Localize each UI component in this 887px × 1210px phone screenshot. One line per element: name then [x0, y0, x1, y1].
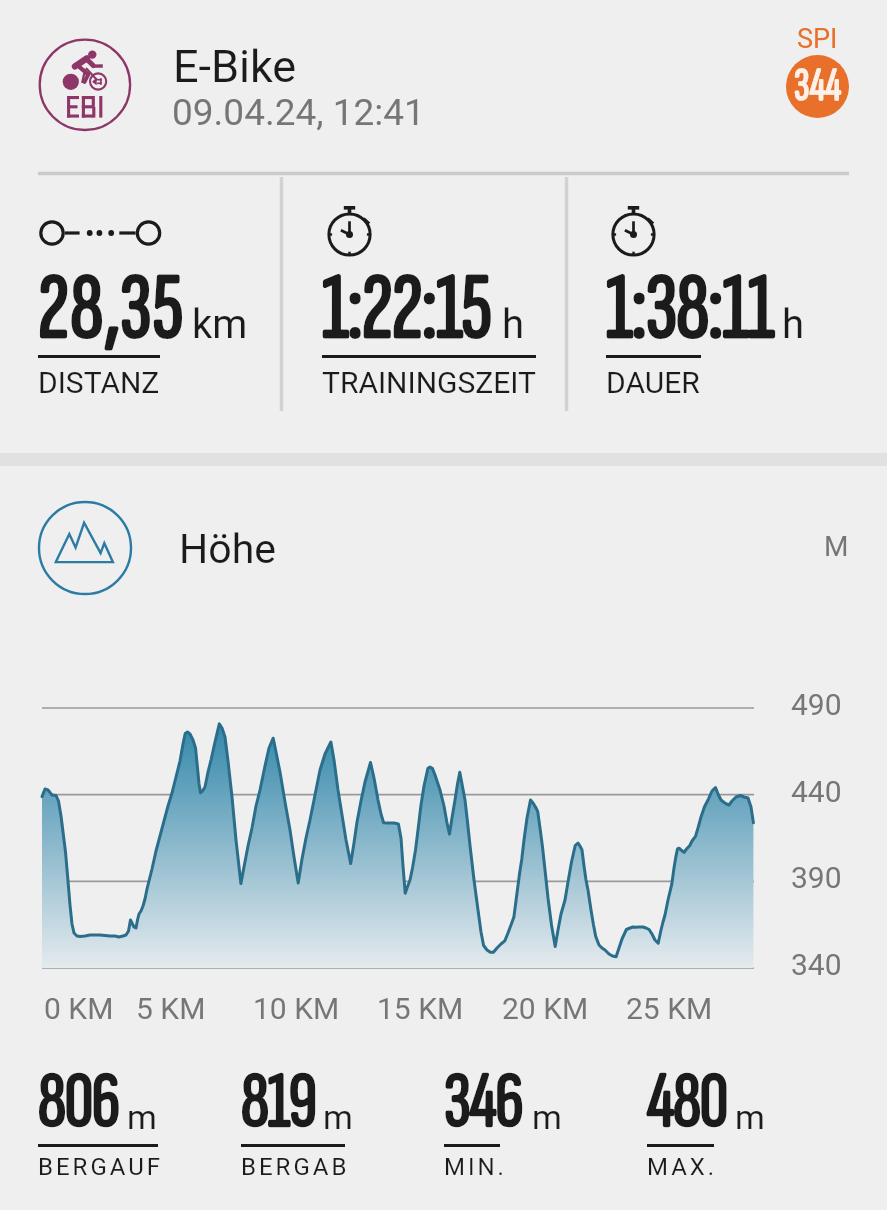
staticText: 10 KM: [253, 991, 340, 1026]
staticText: Höhe: [179, 525, 276, 573]
staticText: m: [323, 1097, 353, 1137]
button[interactable]: 480: [647, 1054, 842, 1194]
staticText: 20 KM: [502, 991, 589, 1026]
staticText: DISTANZ: [38, 365, 160, 400]
staticText: 440: [791, 774, 842, 809]
staticText: 819: [241, 1054, 316, 1150]
staticText: 346: [444, 1054, 523, 1150]
button[interactable]: 806: [38, 1054, 233, 1194]
staticText: 09.04.24, 12:41: [172, 91, 425, 134]
button[interactable]: E-Bike activity: [36, 25, 133, 122]
staticText: 490: [791, 687, 842, 722]
staticText: 806: [38, 1054, 119, 1150]
staticText: 0 KM: [44, 991, 114, 1026]
staticText: 25 KM: [626, 991, 713, 1026]
staticText: h: [782, 301, 805, 348]
staticText: E-Bike: [173, 40, 297, 93]
staticText: MIN.: [444, 1153, 507, 1181]
staticText: BERGAB: [241, 1153, 350, 1181]
staticText: 340: [791, 947, 842, 982]
staticText: m: [735, 1097, 765, 1137]
staticText: m: [127, 1097, 157, 1137]
button[interactable]: 819: [241, 1054, 436, 1194]
staticText: MAX.: [647, 1153, 718, 1181]
staticText: 15 KM: [377, 991, 464, 1026]
button[interactable]: SPI score 344: [780, 23, 854, 118]
staticText: m: [532, 1097, 562, 1137]
staticText: 344: [794, 59, 842, 114]
button[interactable]: Höhe: [0, 477, 887, 620]
staticText: SPI: [797, 23, 838, 55]
staticText: TRAININGSZEIT: [322, 365, 536, 400]
staticText: 480: [647, 1054, 727, 1150]
staticText: M: [824, 530, 849, 563]
staticText: 1:38:11: [606, 252, 774, 365]
button[interactable]: 28,35: [38, 177, 278, 411]
button[interactable]: 346: [444, 1054, 639, 1194]
staticText: BERGAUF: [38, 1153, 164, 1181]
staticText: 1:22:15: [322, 252, 491, 365]
staticText: DAUER: [606, 365, 700, 400]
staticText: km: [192, 301, 248, 348]
button[interactable]: 1:22:15: [322, 177, 564, 411]
staticText: 28,35: [38, 252, 185, 365]
button[interactable]: 1:38:11: [606, 177, 849, 411]
staticText: 390: [791, 860, 842, 895]
staticText: 5 KM: [136, 991, 206, 1026]
staticText: h: [502, 301, 525, 348]
